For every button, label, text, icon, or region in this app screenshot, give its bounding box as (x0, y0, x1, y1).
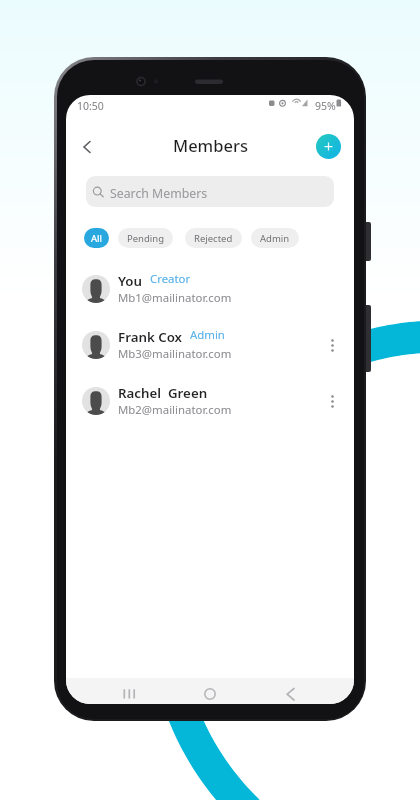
staticText: Admin (260, 232, 290, 245)
button[interactable]: Back (275, 684, 305, 703)
staticText: Rejected (194, 232, 233, 245)
button[interactable]: Back (74, 133, 102, 161)
button[interactable]: All (84, 228, 109, 248)
staticText: Mb3@mailinator.com (118, 346, 232, 362)
staticText: Frank Cox (118, 328, 183, 346)
staticText: Mb2@mailinator.com (118, 402, 232, 418)
staticText: Rachel Green (118, 384, 208, 402)
button[interactable]: Add member (316, 134, 341, 159)
button[interactable]: More options (320, 389, 344, 413)
staticText: Members (173, 134, 248, 156)
button[interactable]: Recents (114, 684, 144, 703)
button[interactable]: Admin (251, 228, 299, 248)
button[interactable]: Rejected (185, 228, 242, 248)
button[interactable]: Frank Cox (66, 317, 354, 373)
staticText: Search Members (110, 185, 208, 202)
button[interactable]: Pending (118, 228, 173, 248)
button[interactable]: Search Members (86, 176, 334, 207)
staticText: Pending (127, 232, 164, 245)
staticText: Mb1@mailinator.com (118, 290, 232, 306)
staticText: Admin (190, 327, 225, 343)
staticText: 95% (315, 99, 336, 113)
button[interactable]: You (66, 261, 354, 317)
staticText: Creator (150, 271, 191, 287)
button[interactable]: Home (195, 684, 225, 703)
staticText: You (118, 272, 143, 290)
staticText: All (91, 232, 102, 245)
button[interactable]: More options (320, 333, 344, 357)
button[interactable]: Rachel Green (66, 373, 354, 429)
staticText: 10:50 (77, 99, 104, 113)
